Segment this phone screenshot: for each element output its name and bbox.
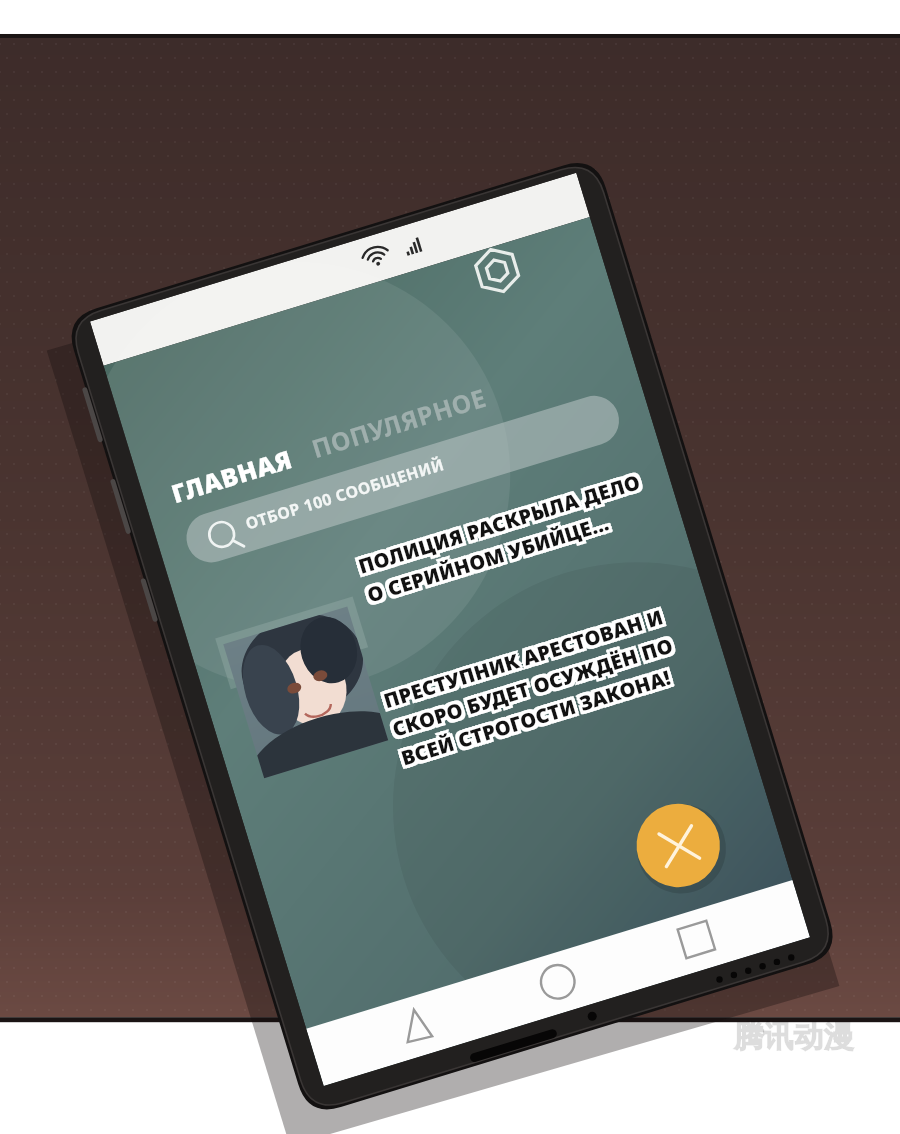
button[interactable]: Create new post: [683, 758, 767, 842]
button[interactable]: Популярное tab: [248, 272, 378, 306]
button[interactable]: Отбор 100 сообщений search: [170, 330, 570, 392]
button[interactable]: Home: [565, 910, 635, 970]
button[interactable]: Recent apps: [688, 875, 758, 935]
button[interactable]: Главная tab: [146, 284, 256, 318]
button[interactable]: Back: [430, 955, 500, 1015]
button[interactable]: News article with photo: [255, 520, 405, 680]
button[interactable]: App logo: [480, 150, 540, 210]
